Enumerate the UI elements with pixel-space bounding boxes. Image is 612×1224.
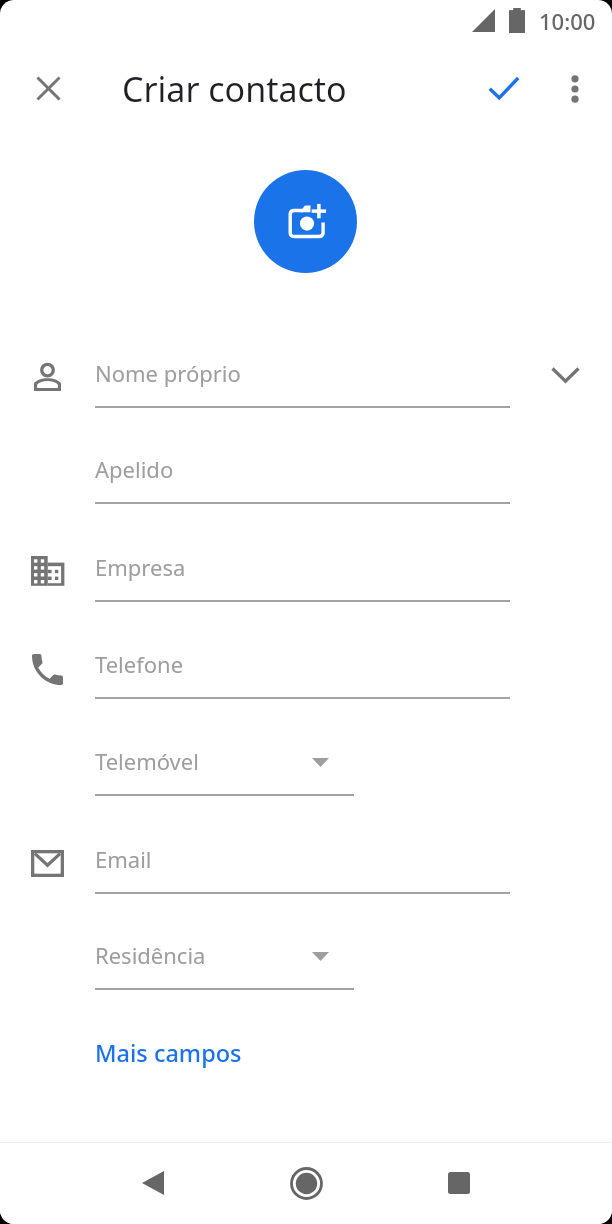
button[interactable]: Home	[266, 1143, 346, 1223]
button[interactable]: Nome próprio	[0, 325, 612, 415]
staticText: Empresa	[95, 552, 186, 582]
staticText: Telemóvel	[95, 746, 199, 776]
button[interactable]: Residência	[0, 907, 612, 997]
button[interactable]: Add photo	[254, 170, 357, 273]
staticText: Mais campos	[95, 1037, 242, 1069]
staticText: Residência	[95, 940, 206, 970]
button[interactable]: Save contact	[464, 48, 544, 128]
button[interactable]: Expand name fields	[535, 345, 595, 405]
staticText: Nome próprio	[95, 358, 241, 388]
button[interactable]: Recent apps	[419, 1143, 499, 1223]
button[interactable]: Mais campos	[80, 1027, 255, 1079]
button[interactable]: Back	[113, 1144, 193, 1224]
button[interactable]: Email	[0, 811, 612, 901]
staticText: Apelido	[95, 454, 174, 484]
button[interactable]: Change label	[295, 739, 345, 783]
staticText: 10:00	[539, 6, 596, 36]
button[interactable]: Telemóvel	[0, 713, 612, 803]
button[interactable]: Telefone	[0, 616, 612, 706]
button[interactable]: Close	[8, 48, 88, 128]
button[interactable]: Change label	[295, 933, 345, 977]
staticText: Telefone	[95, 649, 184, 679]
button[interactable]: More options	[535, 49, 612, 129]
button[interactable]: Empresa	[0, 519, 612, 609]
staticText: Email	[95, 844, 152, 874]
button[interactable]: Apelido	[0, 421, 612, 511]
staticText: Criar contacto	[122, 66, 347, 112]
